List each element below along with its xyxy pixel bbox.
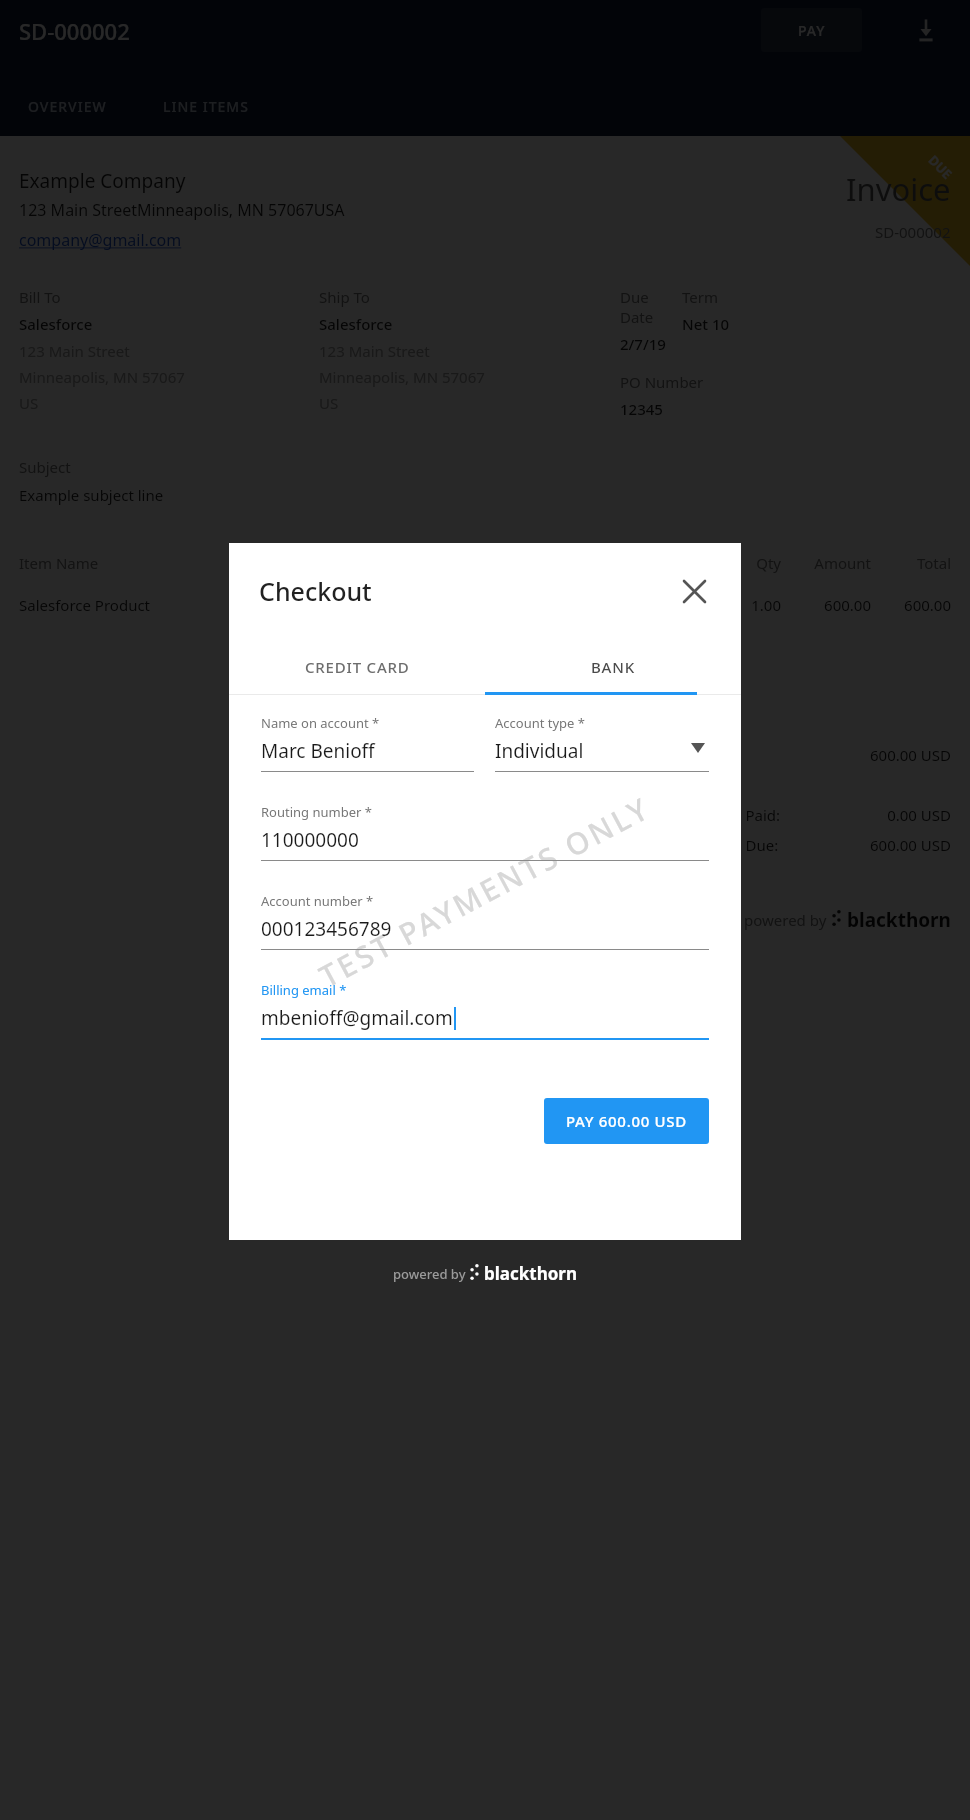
staticText: 600.00 xyxy=(781,595,871,615)
staticText: 1.00 xyxy=(711,595,781,615)
staticText: SD-000002 xyxy=(875,222,951,242)
staticText: Account number * xyxy=(261,892,374,910)
staticText: 123 Main Street xyxy=(19,341,130,361)
button[interactable]: Billing email * xyxy=(261,981,709,1040)
button[interactable]: OVERVIEW xyxy=(0,91,135,122)
staticText: Bill To xyxy=(19,287,61,307)
staticText: blackthorn xyxy=(484,1262,578,1285)
staticText: Total xyxy=(871,553,951,573)
staticText: 123 Main Street xyxy=(319,341,430,361)
staticText: Example Company xyxy=(19,168,186,194)
staticText: Invoice xyxy=(846,168,951,210)
staticText: Due Date xyxy=(620,287,682,327)
staticText: 000123456789 xyxy=(261,916,392,942)
staticText: Net 10 xyxy=(682,314,730,334)
button[interactable]: CREDIT CARD xyxy=(229,638,485,695)
staticText: blackthorn xyxy=(847,907,951,933)
staticText: Invoice Paid: xyxy=(691,805,831,825)
button[interactable]: Name on account * xyxy=(261,714,474,772)
staticText: 12345 xyxy=(620,399,663,419)
staticText: DUE xyxy=(925,151,956,183)
staticText: Routing number * xyxy=(261,803,372,821)
staticText: Ship To xyxy=(319,287,370,307)
staticText: 600.00 USD xyxy=(870,745,951,765)
staticText: Term xyxy=(682,287,718,307)
staticText: LINE ITEMS xyxy=(163,97,249,116)
staticText: Minneapolis, MN 57067 xyxy=(319,367,485,387)
staticText: BANK xyxy=(591,657,635,677)
staticText: Qty xyxy=(711,553,781,573)
staticText: SD-000002 xyxy=(19,16,130,46)
staticText: CREDIT CARD xyxy=(305,657,410,677)
staticText: US xyxy=(19,393,39,413)
staticText: Checkout xyxy=(259,574,372,608)
staticText: OVERVIEW xyxy=(28,97,107,116)
staticText: PAY xyxy=(798,21,826,40)
staticText: Amount xyxy=(781,553,871,573)
staticText: Individual xyxy=(495,738,584,764)
staticText: Account type * xyxy=(495,714,585,732)
staticText: PAY 600.00 USD xyxy=(566,1111,687,1131)
staticText: 123 Main StreetMinneapolis, MN 57067USA xyxy=(19,199,345,221)
button[interactable]: PAY xyxy=(761,8,862,52)
staticText: PO Number xyxy=(620,372,704,392)
staticText: 2/7/19 xyxy=(620,334,666,354)
staticText: 0.00 USD xyxy=(831,805,951,825)
staticText: Salesforce xyxy=(19,314,93,334)
staticText: TEST PAYMENTS ONLY xyxy=(312,786,658,996)
staticText: powered by xyxy=(393,1265,469,1283)
button[interactable]: PAY 600.00 USD xyxy=(544,1098,709,1144)
staticText: powered by xyxy=(744,910,831,930)
staticText: Minneapolis, MN 57067 xyxy=(19,367,185,387)
staticText: 600.00 xyxy=(871,595,951,615)
button[interactable]: BANK xyxy=(485,638,741,695)
button[interactable]: Download xyxy=(906,10,946,50)
button[interactable]: company@gmail.com xyxy=(19,229,182,251)
staticText: Salesforce xyxy=(319,314,393,334)
button[interactable]: Account number * xyxy=(261,892,709,950)
staticText: Marc Benioff xyxy=(261,738,375,764)
staticText: Item Name xyxy=(19,553,711,573)
staticText: Example subject line xyxy=(19,485,164,505)
staticText: Salesforce Product xyxy=(19,595,711,615)
staticText: US xyxy=(319,393,339,413)
staticText: 110000000 xyxy=(261,827,359,853)
staticText: Invoice Due: xyxy=(691,835,831,855)
staticText: 600.00 USD xyxy=(831,835,951,855)
staticText: Subject xyxy=(19,457,71,477)
staticText: mbenioff@gmail.com xyxy=(261,1005,453,1031)
staticText: Name on account * xyxy=(261,714,380,732)
button[interactable]: Routing number * xyxy=(261,803,709,861)
button[interactable]: LINE ITEMS xyxy=(135,91,277,122)
button[interactable]: Account type * xyxy=(495,714,709,772)
staticText: Billing email * xyxy=(261,981,347,999)
button[interactable]: Close xyxy=(671,568,717,614)
